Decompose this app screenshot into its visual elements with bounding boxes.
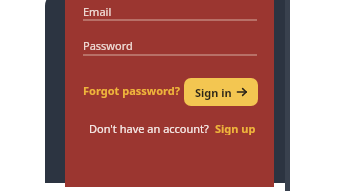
staticText: Don't have an account?: [89, 121, 209, 136]
button[interactable]: Sign up: [213, 120, 258, 136]
button[interactable]: Sign in: [184, 78, 258, 106]
staticText: Forgot password?: [83, 83, 180, 98]
other: Sign in arrow: [237, 87, 247, 97]
staticText: Sign in: [195, 85, 232, 100]
staticText: Email: [83, 4, 112, 19]
staticText: Password: [83, 38, 133, 53]
staticText: Sign up: [215, 121, 256, 135]
button[interactable]: Forgot password?: [81, 80, 182, 101]
